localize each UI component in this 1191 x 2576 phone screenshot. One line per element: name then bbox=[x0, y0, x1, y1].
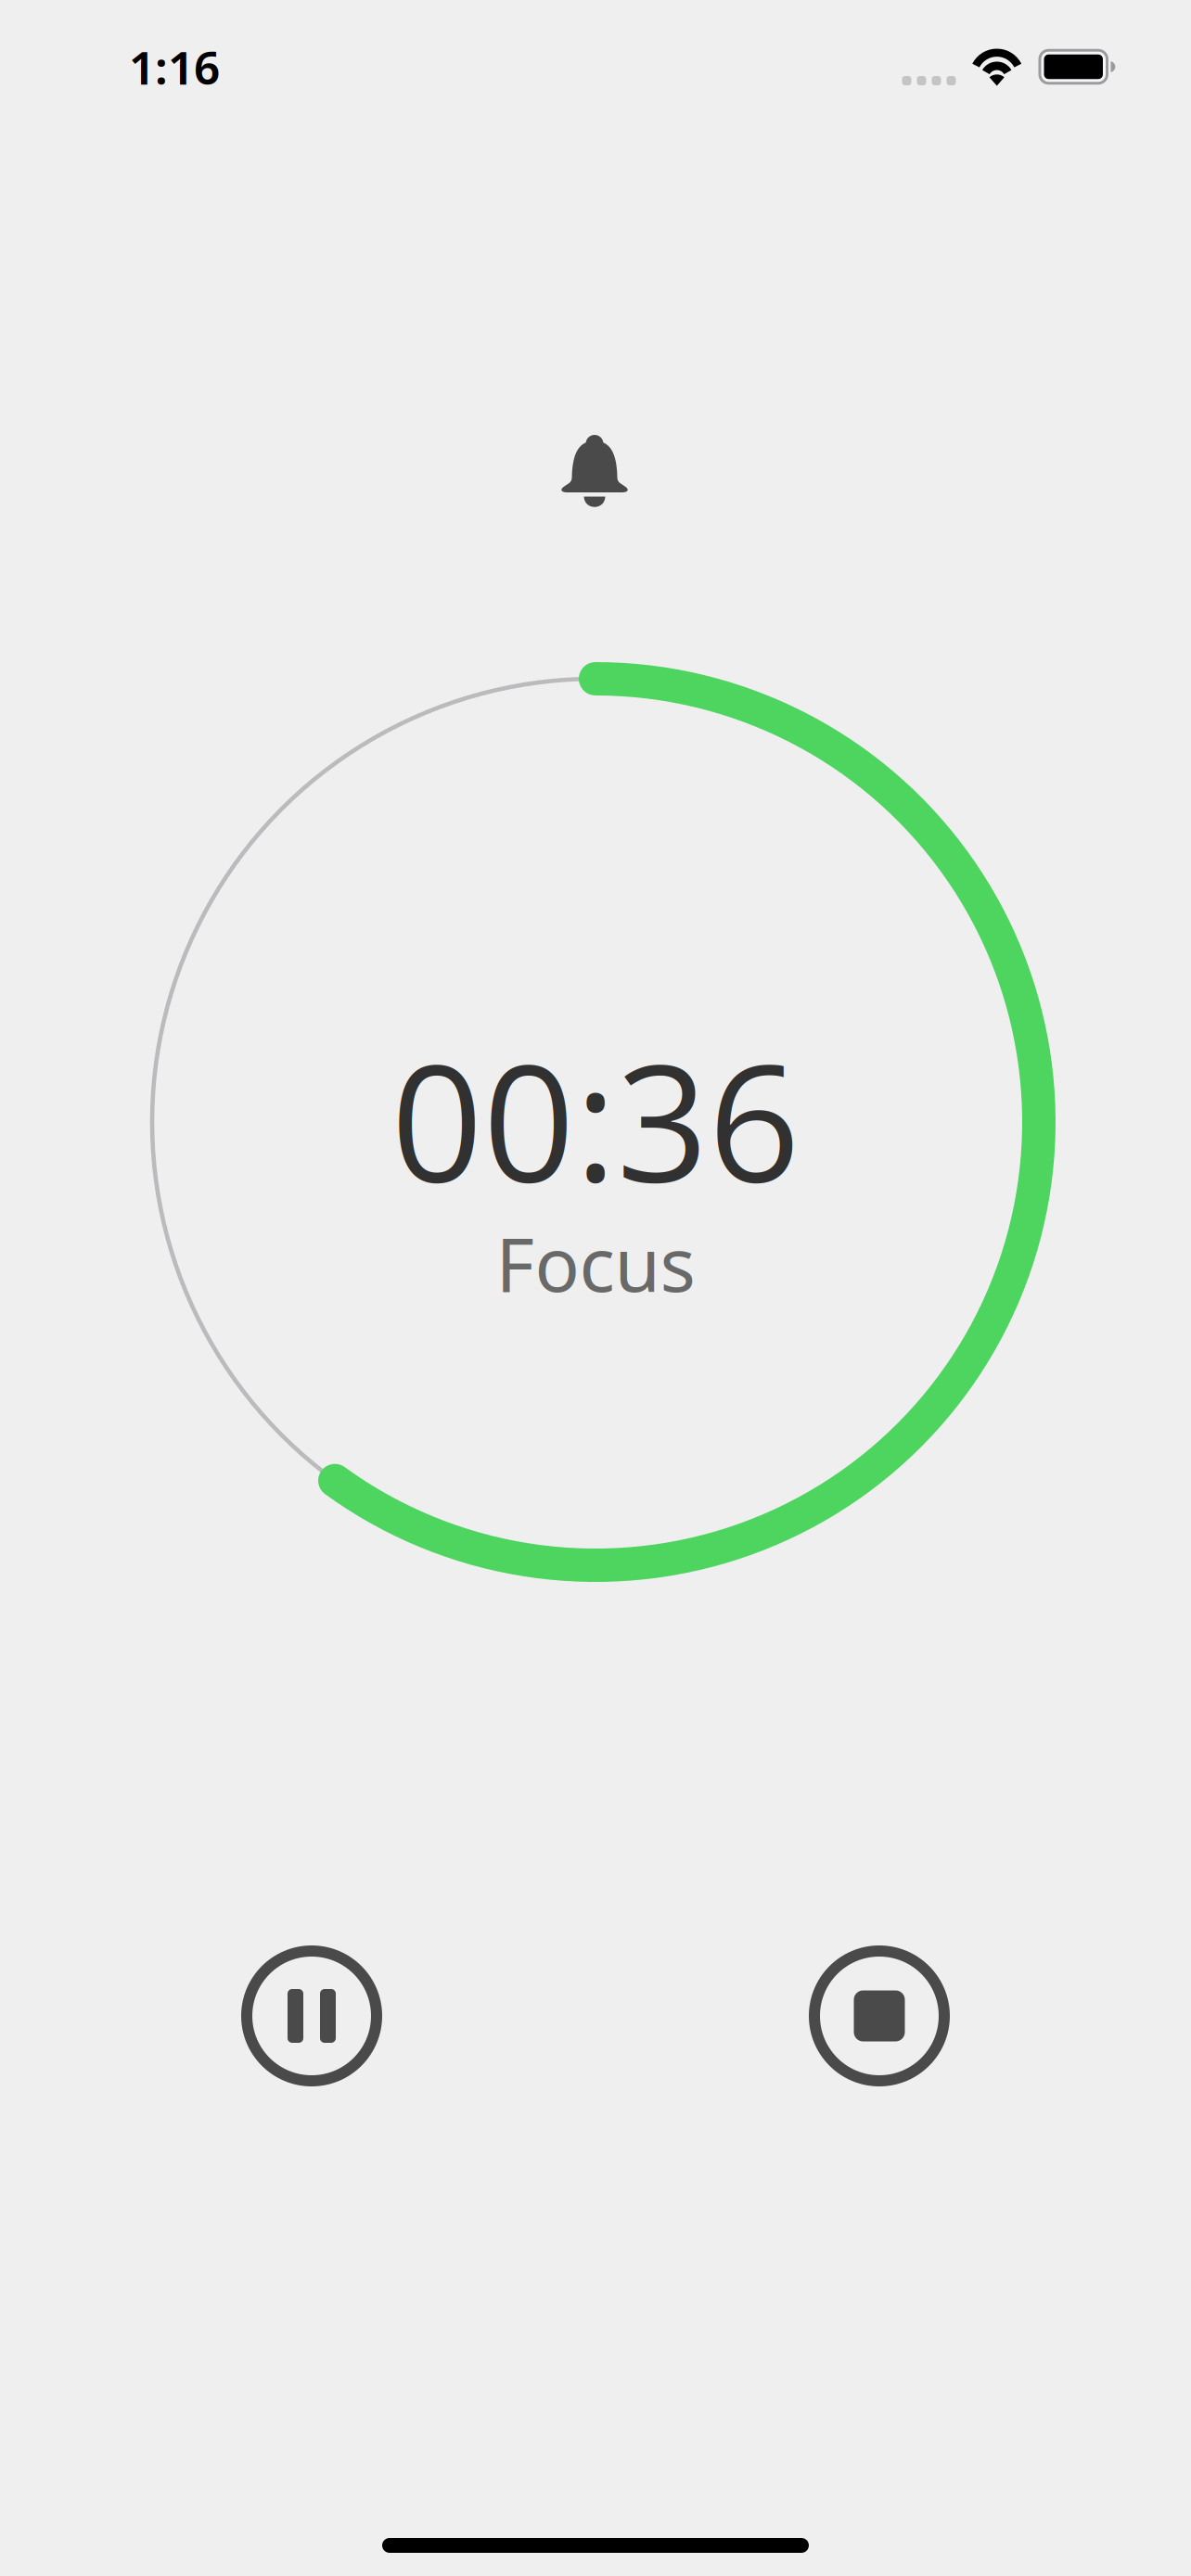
staticText: Focus bbox=[496, 1212, 695, 1314]
button[interactable]: Stop bbox=[809, 1945, 950, 2086]
staticText: 1:16 bbox=[129, 36, 220, 98]
staticText: 00:36 bbox=[391, 1010, 800, 1229]
button[interactable]: Pause bbox=[241, 1945, 382, 2086]
